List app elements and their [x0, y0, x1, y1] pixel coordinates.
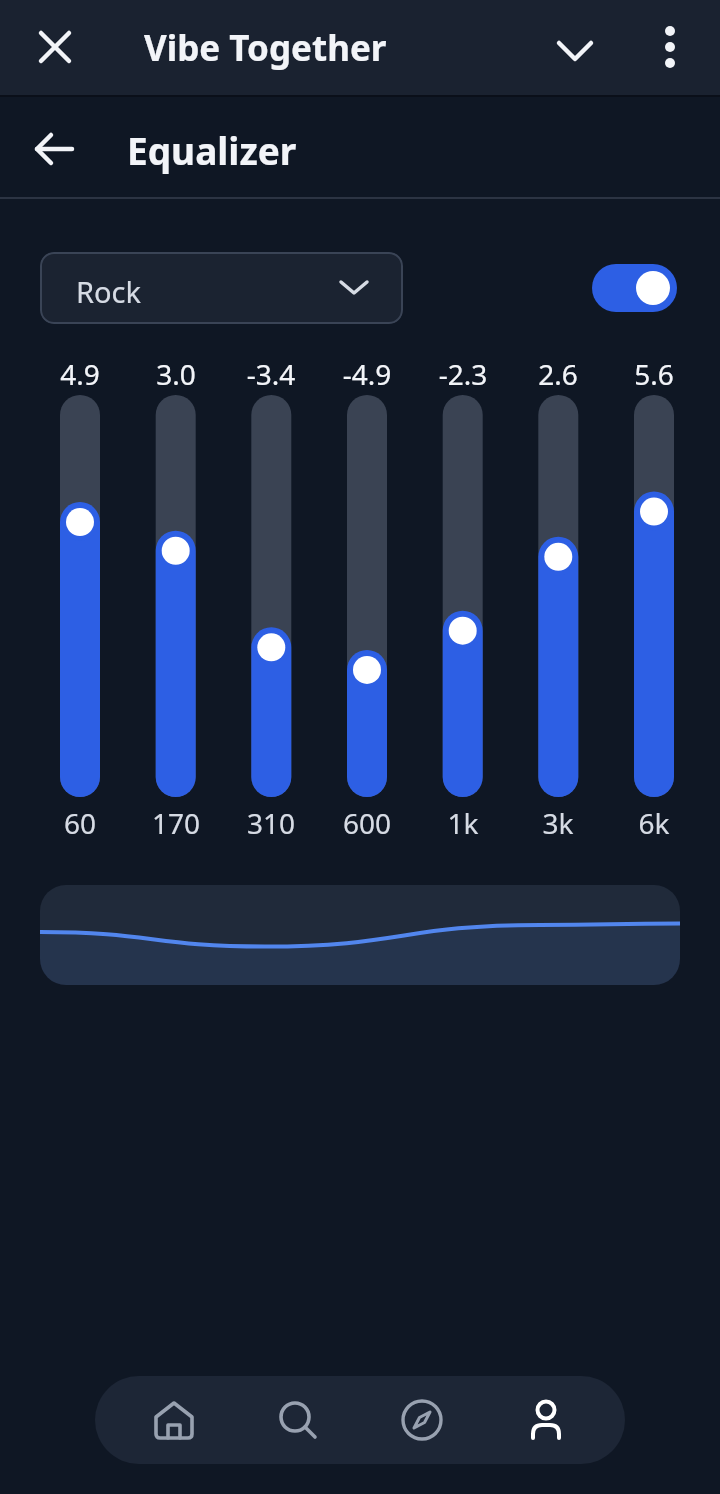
button[interactable]: [484, 1376, 608, 1464]
staticText: 1k: [403, 804, 523, 842]
button[interactable]: [592, 264, 677, 312]
staticText: 3.0: [116, 355, 236, 393]
button[interactable]: [28, 122, 82, 176]
staticText: 6k: [594, 804, 714, 842]
staticText: -4.9: [307, 355, 427, 393]
staticText: 3k: [498, 804, 618, 842]
staticText: -3.4: [211, 355, 331, 393]
button[interactable]: [112, 1376, 236, 1464]
button[interactable]: [30, 22, 80, 72]
staticText: Equalizer: [127, 125, 297, 175]
staticText: 60: [20, 804, 140, 842]
button[interactable]: [360, 1376, 484, 1464]
staticText: 600: [307, 804, 427, 842]
staticText: 2.6: [498, 355, 618, 393]
button[interactable]: [236, 1376, 360, 1464]
staticText: Vibe Together: [144, 24, 387, 72]
staticText: 4.9: [20, 355, 140, 393]
button[interactable]: [550, 25, 600, 75]
staticText: 5.6: [594, 355, 714, 393]
staticText: -2.3: [403, 355, 523, 393]
staticText: 170: [116, 804, 236, 842]
button[interactable]: Rock: [40, 252, 403, 324]
staticText: 310: [211, 804, 331, 842]
button[interactable]: [645, 22, 695, 72]
staticText: Rock: [76, 272, 141, 311]
